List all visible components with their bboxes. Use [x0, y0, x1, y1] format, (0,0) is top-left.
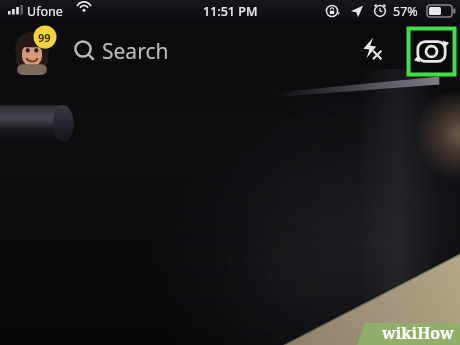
- button[interactable]: Search: [70, 30, 270, 70]
- staticText: 11:51 PM: [203, 3, 258, 20]
- staticText: 57%: [393, 3, 418, 20]
- staticText: wikiHow: [382, 322, 454, 344]
- button[interactable]: Flip camera: [407, 27, 456, 76]
- button[interactable]: Profile: [12, 26, 56, 76]
- button[interactable]: Flash off: [352, 30, 394, 72]
- staticText: Ufone: [27, 3, 63, 20]
- staticText: Search: [102, 37, 169, 66]
- staticText: 99: [38, 30, 51, 45]
